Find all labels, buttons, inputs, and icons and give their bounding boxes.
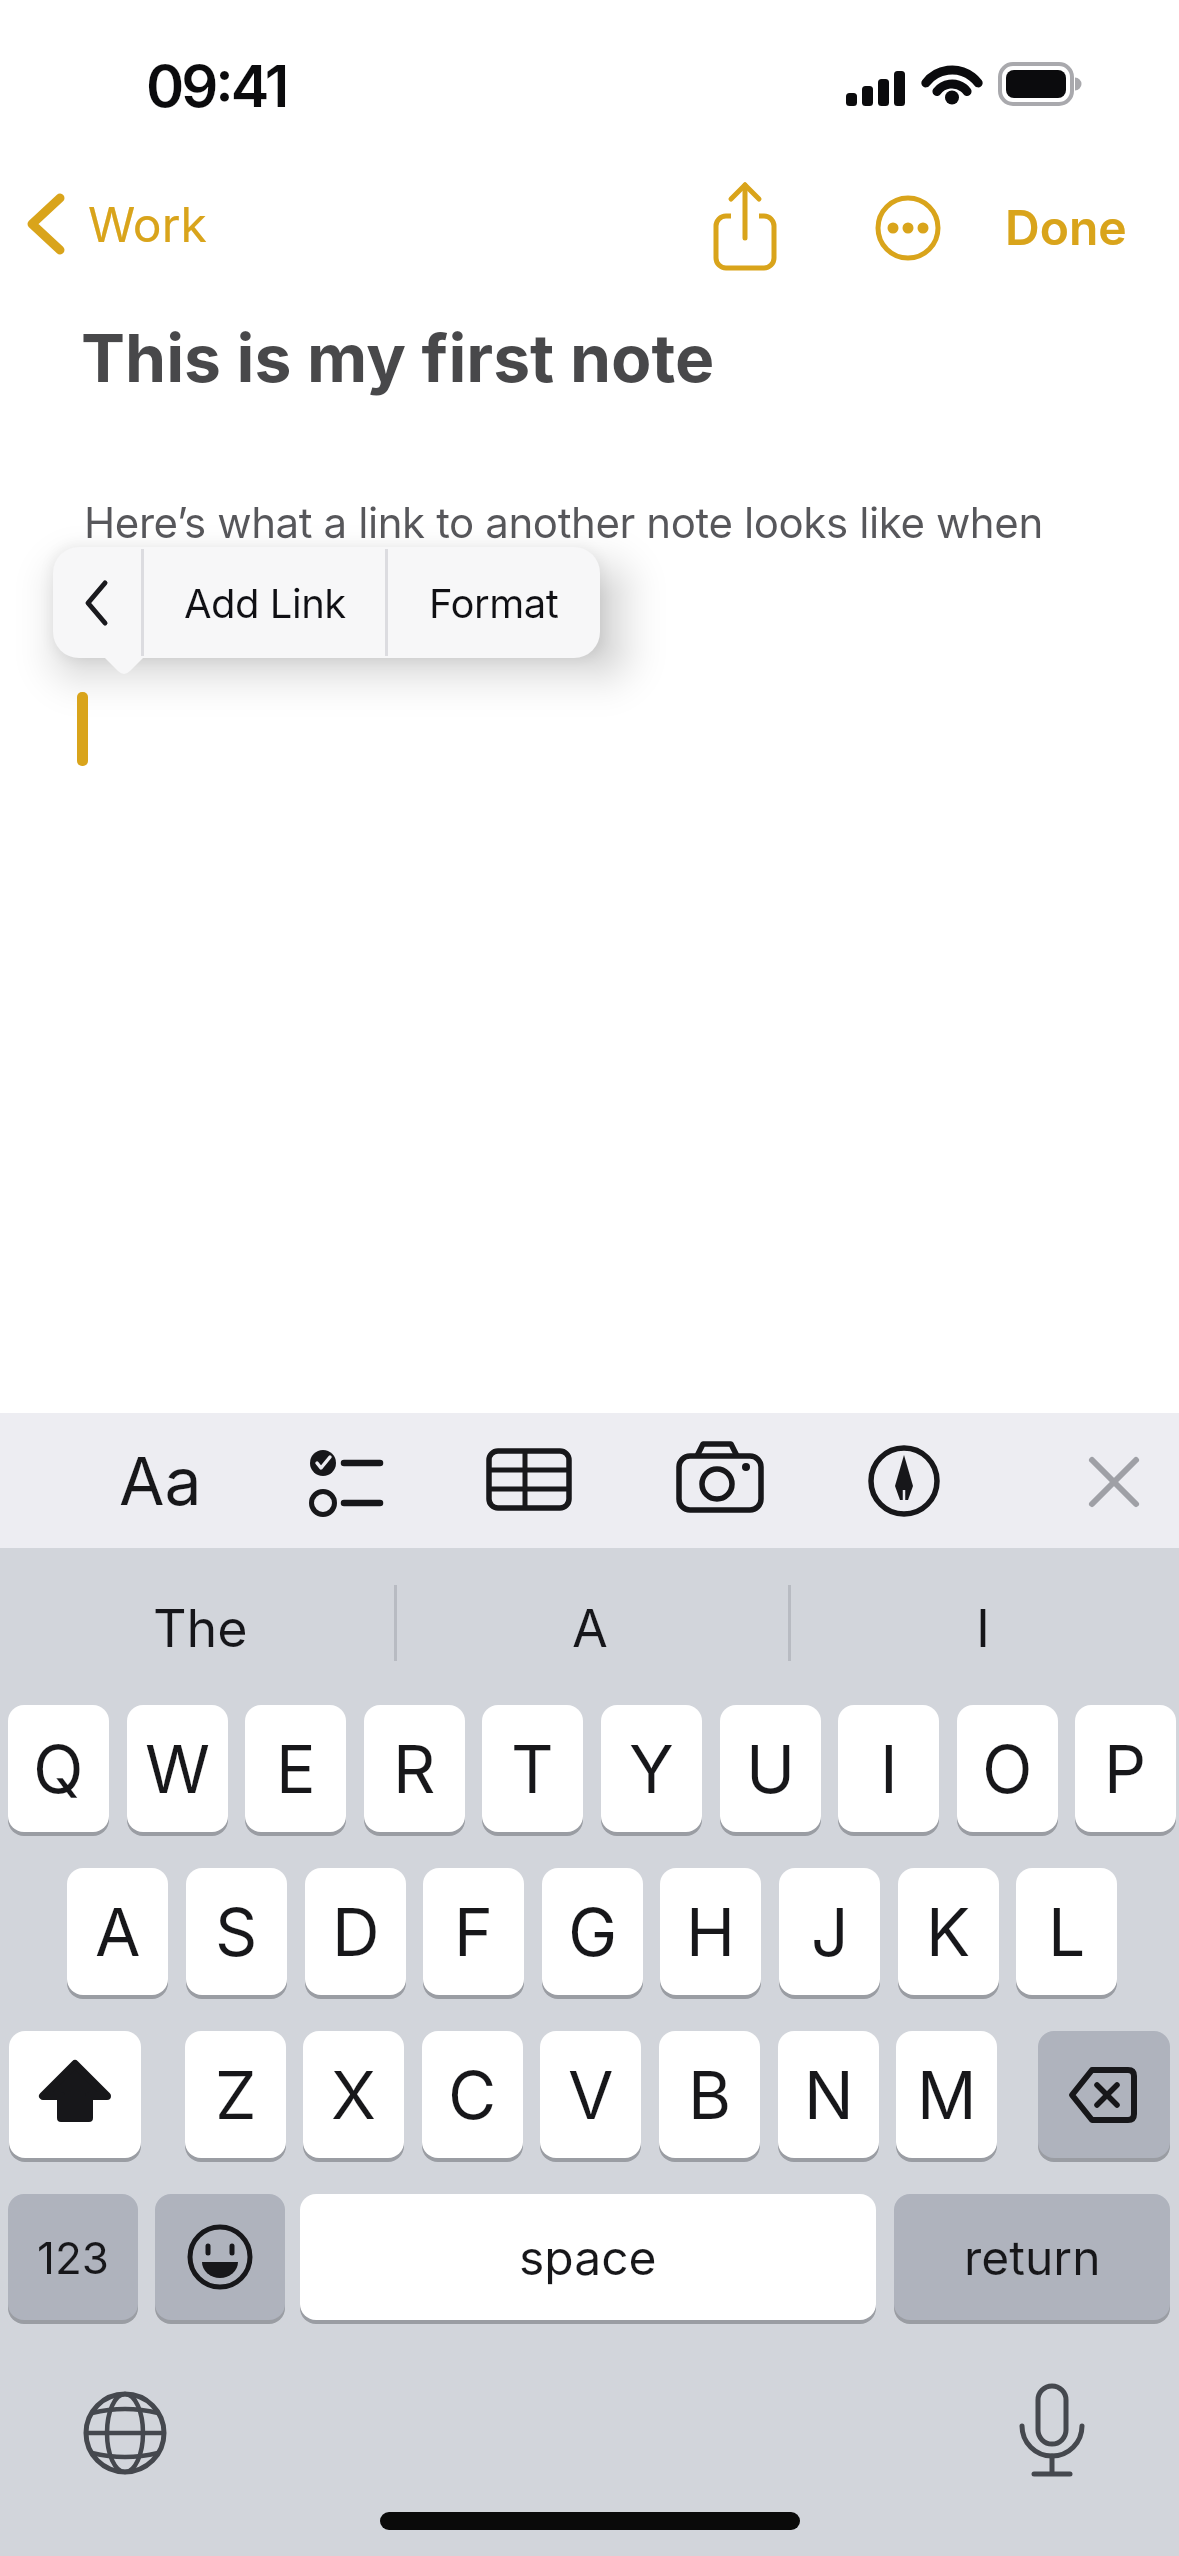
staticText: C	[448, 2055, 497, 2135]
button[interactable]: M	[896, 2031, 997, 2158]
staticText: space	[519, 2228, 657, 2286]
staticText: 123	[37, 2231, 109, 2284]
staticText: H	[686, 1892, 736, 1972]
button[interactable]	[482, 1440, 576, 1522]
staticText: B	[688, 2055, 732, 2135]
staticText: V	[568, 2055, 614, 2135]
button[interactable]: P	[1075, 1705, 1176, 1832]
button[interactable]: Work	[16, 188, 226, 260]
button[interactable]: L	[1016, 1868, 1117, 1995]
button[interactable]: E	[245, 1705, 346, 1832]
staticText: K	[926, 1892, 971, 1972]
button[interactable]: F	[423, 1868, 524, 1995]
button[interactable]: Y	[601, 1705, 702, 1832]
button[interactable]: U	[720, 1705, 821, 1832]
staticText: X	[331, 2055, 377, 2135]
button[interactable]: H	[660, 1868, 761, 1995]
button[interactable]: V	[540, 2031, 641, 2158]
button[interactable]: W	[127, 1705, 228, 1832]
button[interactable]: B	[659, 2031, 760, 2158]
button[interactable]	[874, 194, 942, 262]
staticText: The	[153, 1597, 248, 1660]
button[interactable]: R	[364, 1705, 465, 1832]
staticText: D	[332, 1892, 380, 1972]
button[interactable]	[155, 2194, 285, 2320]
button[interactable]: X	[303, 2031, 404, 2158]
staticText: Done	[1005, 198, 1127, 256]
button[interactable]: The	[40, 1585, 360, 1671]
button[interactable]: Q	[8, 1705, 109, 1832]
button[interactable]	[292, 1436, 396, 1528]
staticText: G	[568, 1892, 618, 1972]
button[interactable]	[53, 547, 141, 658]
staticText: T	[511, 1729, 554, 1809]
button[interactable]: G	[542, 1868, 643, 1995]
staticText: W	[145, 1729, 211, 1809]
staticText: E	[276, 1729, 316, 1809]
button[interactable]: J	[779, 1868, 880, 1995]
button[interactable]	[1002, 2378, 1102, 2494]
staticText: F	[454, 1892, 493, 1972]
staticText: M	[917, 2055, 977, 2135]
staticText: Q	[33, 1729, 84, 1809]
button[interactable]: Format	[388, 547, 600, 658]
staticText: O	[982, 1729, 1033, 1809]
button[interactable]	[672, 1436, 768, 1524]
button[interactable]: Aa	[104, 1438, 216, 1524]
button[interactable]	[73, 2381, 177, 2485]
staticText: J	[811, 1892, 849, 1972]
button[interactable]: 123	[8, 2194, 138, 2320]
button[interactable]: A	[430, 1585, 750, 1671]
staticText: A	[572, 1597, 608, 1660]
staticText: L	[1048, 1892, 1086, 1972]
staticText: Z	[215, 2055, 257, 2135]
staticText: S	[215, 1892, 258, 1972]
button[interactable]	[862, 1440, 946, 1522]
button[interactable]: T	[482, 1705, 583, 1832]
staticText: This is my first note	[81, 318, 715, 398]
staticText: Aa	[119, 1441, 202, 1521]
button[interactable]: A	[67, 1868, 168, 1995]
staticText: return	[964, 2228, 1101, 2286]
button[interactable]: S	[186, 1868, 287, 1995]
staticText: Here’s what a link to another note looks…	[84, 497, 1043, 548]
button[interactable]: space	[300, 2194, 876, 2320]
button[interactable]: D	[305, 1868, 406, 1995]
staticText: A	[95, 1892, 141, 1972]
button[interactable]	[700, 176, 790, 272]
button[interactable]: K	[898, 1868, 999, 1995]
staticText: Add Link	[184, 579, 346, 627]
staticText: I	[976, 1597, 990, 1660]
button[interactable]: return	[894, 2194, 1170, 2320]
button[interactable]: Z	[185, 2031, 286, 2158]
button[interactable]: Add Link	[144, 547, 386, 658]
staticText: Format	[429, 579, 559, 627]
staticText: I	[880, 1729, 898, 1809]
button[interactable]: C	[422, 2031, 523, 2158]
staticText: U	[746, 1729, 796, 1809]
staticText: Y	[629, 1729, 674, 1809]
button[interactable]	[1038, 2031, 1170, 2158]
staticText: N	[804, 2055, 854, 2135]
staticText: R	[393, 1729, 436, 1809]
button[interactable]: I	[823, 1585, 1143, 1671]
button[interactable]: O	[957, 1705, 1058, 1832]
staticText: 09:41	[146, 51, 287, 109]
button[interactable]	[9, 2031, 141, 2158]
button[interactable]: N	[778, 2031, 879, 2158]
button[interactable]: I	[838, 1705, 939, 1832]
staticText: P	[1104, 1729, 1147, 1809]
button[interactable]	[1078, 1448, 1150, 1516]
button[interactable]: Done	[996, 196, 1136, 258]
staticText: Work	[88, 195, 207, 253]
